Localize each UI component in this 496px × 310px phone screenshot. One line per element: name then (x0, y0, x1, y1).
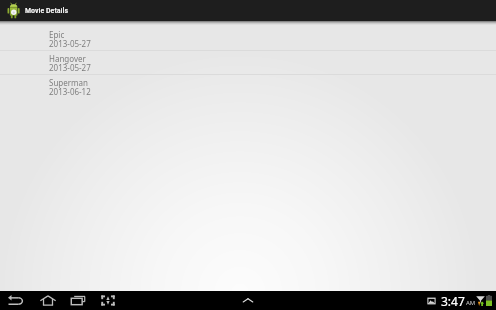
staticText: 2013-05-27 (49, 38, 91, 48)
staticText: AM (466, 299, 476, 307)
staticText: 2013-05-27 (49, 62, 91, 72)
button[interactable]: Screenshot (96, 291, 120, 310)
staticText: Superman (49, 77, 88, 88)
staticText: Epic (49, 29, 65, 40)
button[interactable]: Superman (0, 75, 496, 98)
staticText: 2013-06-12 (49, 86, 91, 96)
button[interactable]: Movie Details (0, 0, 496, 21)
staticText: Hangover (49, 53, 86, 64)
button[interactable]: Recent apps (66, 291, 90, 310)
button[interactable]: System status (424, 291, 496, 310)
staticText: Movie Details (25, 6, 69, 15)
button[interactable]: Open notifications (238, 291, 258, 310)
button[interactable]: Home (36, 291, 60, 310)
button[interactable]: Back (4, 291, 28, 310)
button[interactable]: Hangover (0, 51, 496, 74)
button[interactable]: Epic (0, 27, 496, 50)
staticText: 3:47 (441, 293, 465, 309)
